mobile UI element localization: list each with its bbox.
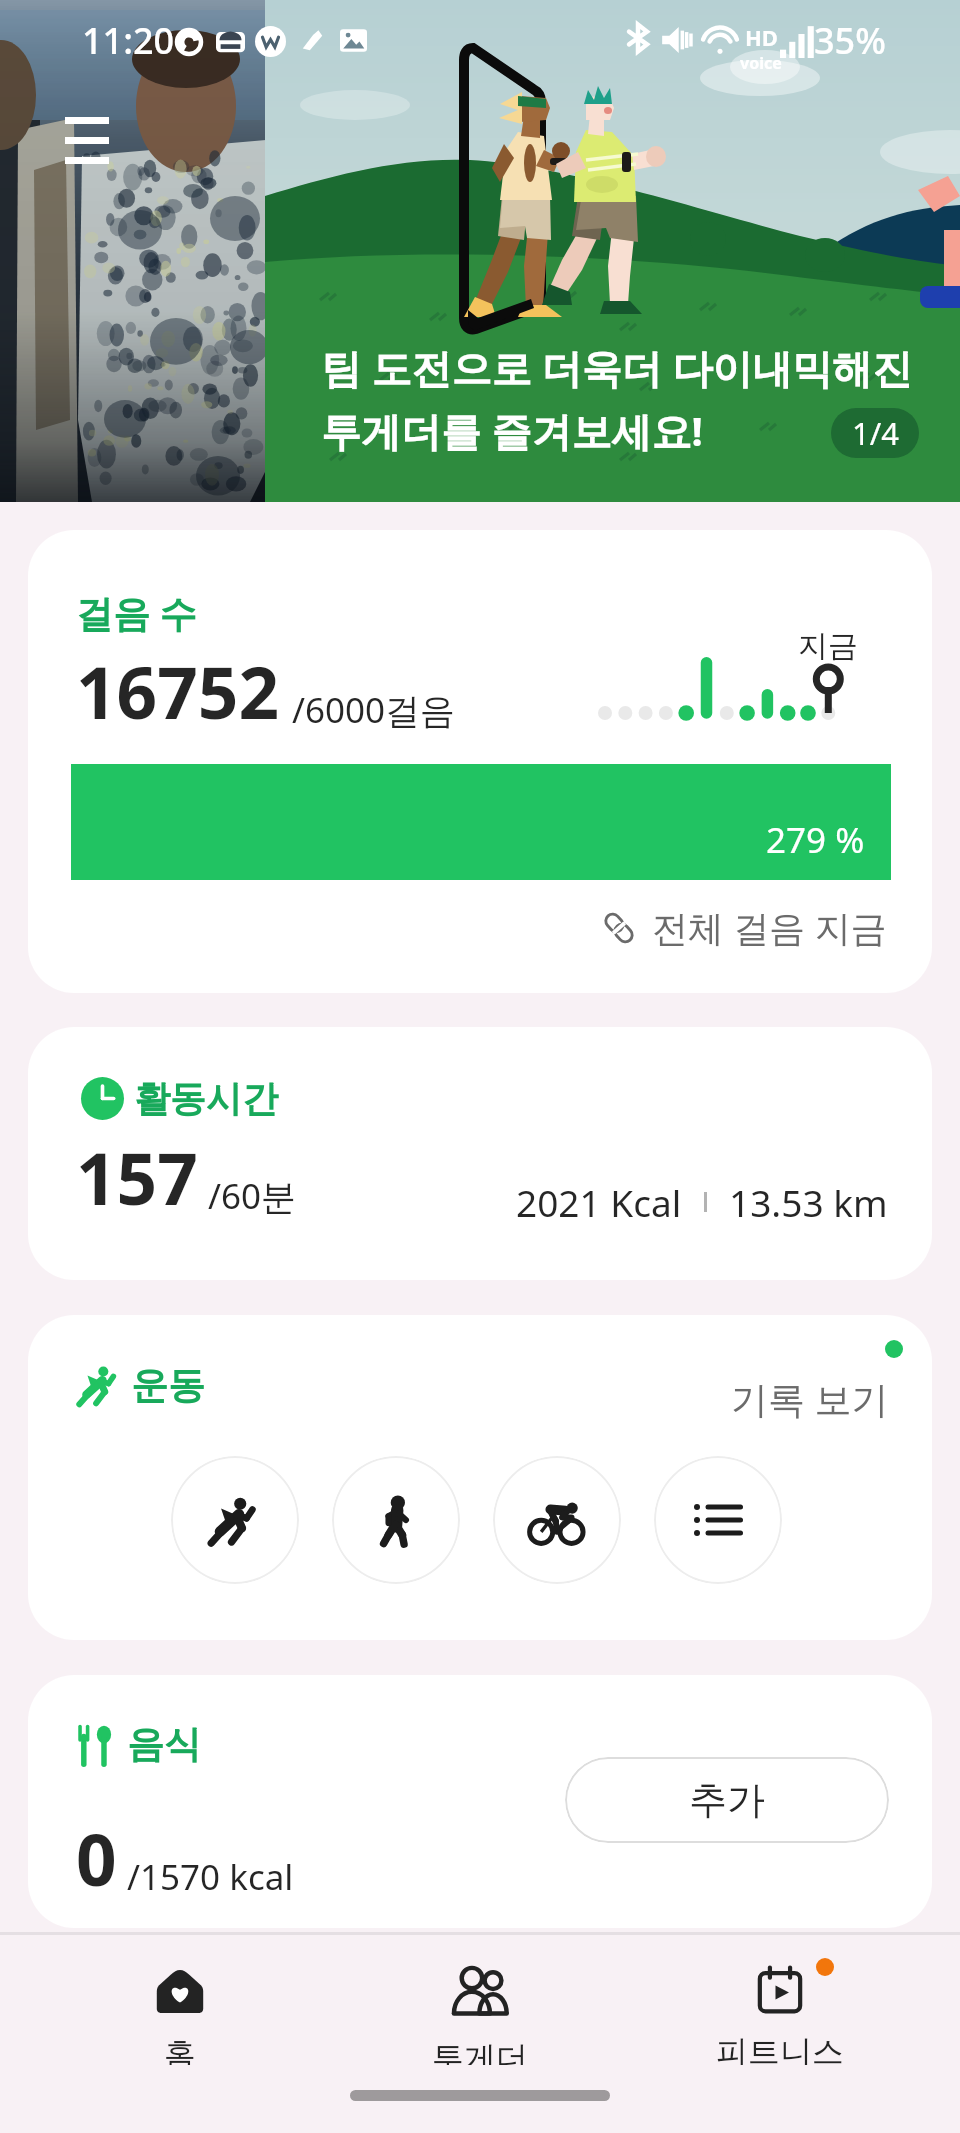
staticText: 기록 보기 (731, 1373, 889, 1424)
staticText: 지금 (798, 627, 858, 665)
button[interactable]: 활동시간 (28, 1027, 932, 1280)
staticText: 걸음 수 (76, 587, 197, 638)
staticText: HD (745, 22, 778, 52)
staticText: voice (740, 52, 782, 74)
staticText: 35% (814, 16, 886, 65)
button[interactable]: 걸음 수 (28, 530, 932, 993)
staticText: 279 % (766, 816, 865, 864)
staticText: 홈 (164, 2034, 196, 2065)
button[interactable]: Run (171, 1456, 299, 1584)
staticText: /6000걸음 (292, 686, 456, 734)
button[interactable]: 피트니스 (630, 1935, 930, 2065)
button[interactable]: Walk (332, 1456, 460, 1584)
button[interactable]: More (654, 1456, 782, 1584)
staticText: 활동시간 (134, 1076, 278, 1121)
button[interactable]: 운동 (28, 1315, 932, 1640)
staticText: 투게더 (432, 2038, 528, 2065)
staticText: 2021 Kcal (516, 1177, 682, 1227)
staticText: /1570 kcal (127, 1853, 294, 1901)
button[interactable]: 홈 (30, 1935, 330, 2065)
staticText: 운동 (131, 1362, 205, 1409)
staticText: 팀 도전으로 더욱더 다이내믹해진 (321, 340, 913, 395)
button[interactable]: 기록 보기 (725, 1367, 895, 1430)
button[interactable]: 투게더 (330, 1935, 630, 2065)
button[interactable]: 팀 도전으로 더욱더 다이내믹해진 (0, 0, 960, 502)
staticText: 0 (76, 1810, 117, 1907)
button[interactable]: 전체 걸음 지금 (28, 903, 887, 952)
staticText: 157 (76, 1129, 198, 1226)
staticText: 1/4 (852, 412, 899, 454)
staticText: 16752 (76, 643, 280, 740)
button[interactable]: Menu (65, 117, 109, 164)
staticText: 전체 걸음 지금 (652, 903, 887, 952)
button[interactable]: Cycle (493, 1456, 621, 1584)
staticText: 음식 (127, 1721, 201, 1768)
staticText: 13.53 km (729, 1177, 888, 1227)
staticText: /60분 (208, 1172, 297, 1220)
button[interactable]: 추가 (565, 1757, 889, 1843)
staticText: 11:20 (82, 16, 175, 65)
staticText: 투게더를 즐겨보세요! (321, 403, 703, 458)
staticText: 추가 (689, 1776, 765, 1824)
staticText: 피트니스 (716, 2032, 844, 2065)
button[interactable]: 1/4 (831, 408, 919, 458)
button[interactable]: 음식 (28, 1675, 932, 1928)
